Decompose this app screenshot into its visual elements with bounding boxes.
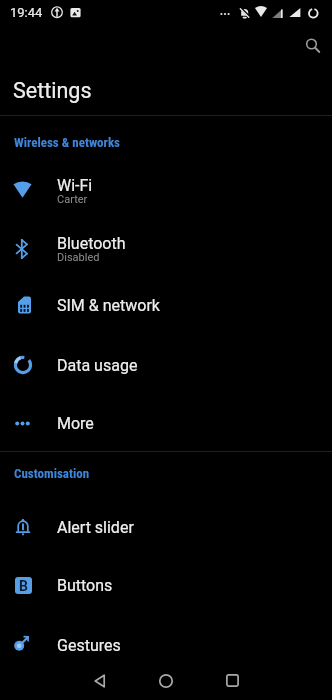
staticText: Settings (13, 78, 92, 103)
staticText: More (57, 414, 94, 433)
staticText: Buttons (57, 576, 113, 595)
staticText: Wi-Fi (57, 176, 93, 195)
staticText: Customisation (14, 466, 90, 481)
staticText: Wireless & networks (14, 135, 121, 150)
staticText: SIM & network (57, 296, 160, 315)
button[interactable]: SIM & network (0, 277, 332, 333)
button[interactable]: More (0, 395, 332, 451)
staticText: Bluetooth (57, 234, 126, 253)
button[interactable] (220, 674, 244, 700)
button[interactable]: Alert slider (0, 498, 332, 556)
staticText: Gestures (57, 636, 121, 655)
button[interactable] (154, 674, 178, 700)
staticText: Alert slider (57, 518, 134, 537)
staticText: B (19, 578, 28, 594)
staticText: Carter (57, 193, 88, 206)
button[interactable] (298, 32, 326, 60)
staticText: Disabled (57, 251, 100, 264)
staticText: Data usage (57, 356, 138, 375)
button[interactable]: B (0, 556, 332, 614)
button[interactable]: Data usage (0, 337, 332, 393)
button[interactable]: Wi-Fi (0, 162, 332, 220)
staticText: 19:44 (10, 5, 43, 20)
button[interactable] (88, 674, 112, 700)
button[interactable]: Bluetooth (0, 220, 332, 277)
button[interactable]: Gestures (0, 616, 332, 674)
